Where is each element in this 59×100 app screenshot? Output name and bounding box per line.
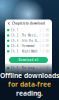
staticText: Ch. 2 · The Meeting [11, 34, 38, 37]
staticText: Offline downloads [0, 71, 59, 80]
staticText: Ch. 4 · Homeward [11, 44, 35, 48]
staticText: Chapters to download [12, 22, 45, 25]
staticText: Ch. 1 [11, 28, 19, 32]
button[interactable]: Ch. 6 · The Long Road [5, 65, 52, 71]
button[interactable]: Back [6, 21, 11, 26]
staticText: 1.9 MB [39, 34, 49, 37]
staticText: 1.7 MB [39, 72, 49, 75]
button[interactable]: Ch. 5 · Night Watch [5, 49, 52, 54]
staticText: Ch. 5 · Night Watch [11, 50, 38, 53]
button[interactable]: Ch. 7 · Dawnlight [5, 71, 52, 76]
staticText: for data-free [8, 80, 51, 89]
button[interactable]: Ch. 2 · The Meeting [5, 33, 52, 38]
staticText: 2.1 MB [39, 28, 49, 32]
button[interactable]: Ch. 4 · Homeward [5, 43, 52, 49]
staticText: reading. [16, 89, 43, 97]
staticText: 2.4 MB [39, 39, 49, 42]
staticText: 2.3 MB [39, 77, 49, 80]
button[interactable]: Download all [9, 57, 48, 63]
button[interactable]: Ch. 8 · Final Page [5, 76, 52, 81]
button[interactable]: Ch. 3 · Into the Storm [5, 38, 52, 43]
staticText: 2.2 MB [39, 66, 49, 70]
staticText: Ch. 3 · Into the Storm [11, 39, 38, 42]
staticText: Ch. 8 · Final Page [11, 77, 36, 80]
button[interactable]: Ch. 1 [5, 27, 52, 33]
staticText: 2.0 MB [39, 44, 49, 48]
staticText: 1.8 MB [39, 50, 49, 53]
staticText: Ch. 6 · The Long Road [11, 66, 38, 70]
staticText: Download all [18, 58, 38, 62]
staticText: Ch. 7 · Dawnlight [11, 72, 36, 75]
